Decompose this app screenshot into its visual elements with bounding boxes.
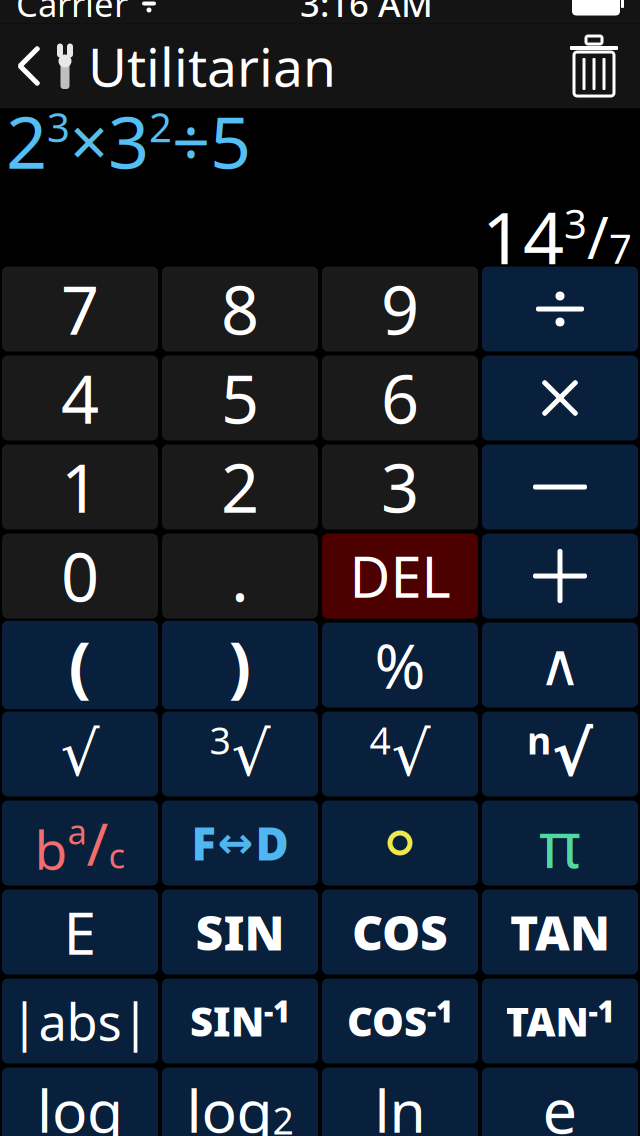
button[interactable]: SIN [162,889,318,974]
staticText: 2 [272,1095,293,1136]
button[interactable]: COS [322,978,478,1063]
button[interactable]: 5 [162,355,318,440]
staticText: COS [347,994,427,1047]
staticText: 3:16 AM [300,0,433,26]
button[interactable]: SIN [162,978,318,1063]
staticText: b [34,814,67,884]
button[interactable]: Clear [548,25,640,107]
staticText: F [191,813,215,873]
staticText: 3 [209,715,230,765]
button[interactable]: π [482,800,638,885]
staticText: % [374,624,425,706]
button[interactable]: 7 [2,266,158,351]
staticText: -1 [588,991,614,1030]
staticText: SIN [195,900,284,964]
staticText: 2 [6,93,47,188]
staticText: / [86,804,108,882]
staticText: 5 [210,93,251,188]
button[interactable]: 1 [2,444,158,529]
button[interactable]: |abs| [2,978,158,1063]
button[interactable]: ( [2,622,158,707]
staticText: 14 [482,188,564,284]
button[interactable]: 3 [322,444,478,529]
staticText: a [67,808,86,854]
button[interactable]: DEL [322,533,478,618]
button[interactable]: log [2,1067,158,1136]
staticText: 0 [61,532,99,620]
staticText: e [542,1069,577,1136]
button[interactable]: ln [322,1067,478,1136]
staticText: 5 [221,354,259,442]
button[interactable]: log [162,1067,318,1136]
staticText: log [37,1071,123,1136]
button[interactable]: Utilitarian [0,21,336,111]
button[interactable]: 8 [162,266,318,351]
staticText: π [539,800,581,885]
button[interactable]: . [162,533,318,618]
staticText: 6 [381,354,419,442]
button[interactable] [322,800,478,885]
staticText: -1 [427,991,453,1030]
staticText: DEL [349,539,450,613]
button[interactable]: b [2,800,158,885]
button[interactable]: E [2,889,158,974]
staticText: √ [552,719,593,789]
staticText: ÷ [172,96,210,185]
staticText: COS [352,900,448,964]
button[interactable]: ) [162,622,318,707]
staticText: ) [228,621,251,709]
staticText: Utilitarian [88,31,336,101]
staticText: ln [374,1071,425,1136]
button[interactable]: TAN [482,978,638,1063]
button[interactable]: % [322,622,478,707]
button[interactable]: 9 [322,266,478,351]
staticText: E [63,893,96,971]
staticText: / [587,197,609,275]
button[interactable]: COS [322,889,478,974]
button[interactable]: 0 [2,533,158,618]
button[interactable]: 4 [322,711,478,796]
button[interactable] [482,266,638,351]
staticText: × [70,96,108,185]
staticText: D [255,813,288,873]
button[interactable]: TAN [482,889,638,974]
button[interactable] [482,355,638,440]
staticText: 8 [221,265,259,353]
staticText: 2 [149,100,172,153]
staticText: √ [391,719,430,789]
button[interactable] [482,533,638,618]
staticText: log [186,1071,272,1136]
button[interactable]: 4 [2,355,158,440]
staticText: |abs| [10,987,149,1055]
staticText: TAN [510,900,610,964]
staticText: 3 [108,93,149,188]
button[interactable]: 2 [162,444,318,529]
staticText: 1 [61,443,99,531]
staticText: SIN [190,994,264,1047]
button[interactable]: e [482,1067,638,1136]
staticText: 3 [564,197,587,250]
button[interactable]: n [482,711,638,796]
staticText: √ [231,719,270,789]
staticText: ∧ [538,632,581,698]
staticText: 3 [47,100,70,153]
button[interactable] [482,444,638,529]
staticText: Carrier [16,0,128,26]
button[interactable]: ∧ [482,622,638,707]
staticText: TAN [505,994,588,1047]
staticText: . [231,532,249,620]
staticText: 4 [61,354,99,442]
staticText: √ [60,719,99,789]
button[interactable]: √ [2,711,158,796]
staticText: ↔ [217,819,253,867]
staticText: n [527,715,551,765]
staticText: 2 [221,443,259,531]
staticText: 3 [381,443,419,531]
staticText: 9 [381,265,419,353]
staticText: -1 [264,991,290,1030]
staticText: 7 [61,265,99,353]
staticText: ( [68,621,91,709]
button[interactable]: 6 [322,355,478,440]
button[interactable]: 3 [162,711,318,796]
button[interactable]: F [162,800,318,885]
